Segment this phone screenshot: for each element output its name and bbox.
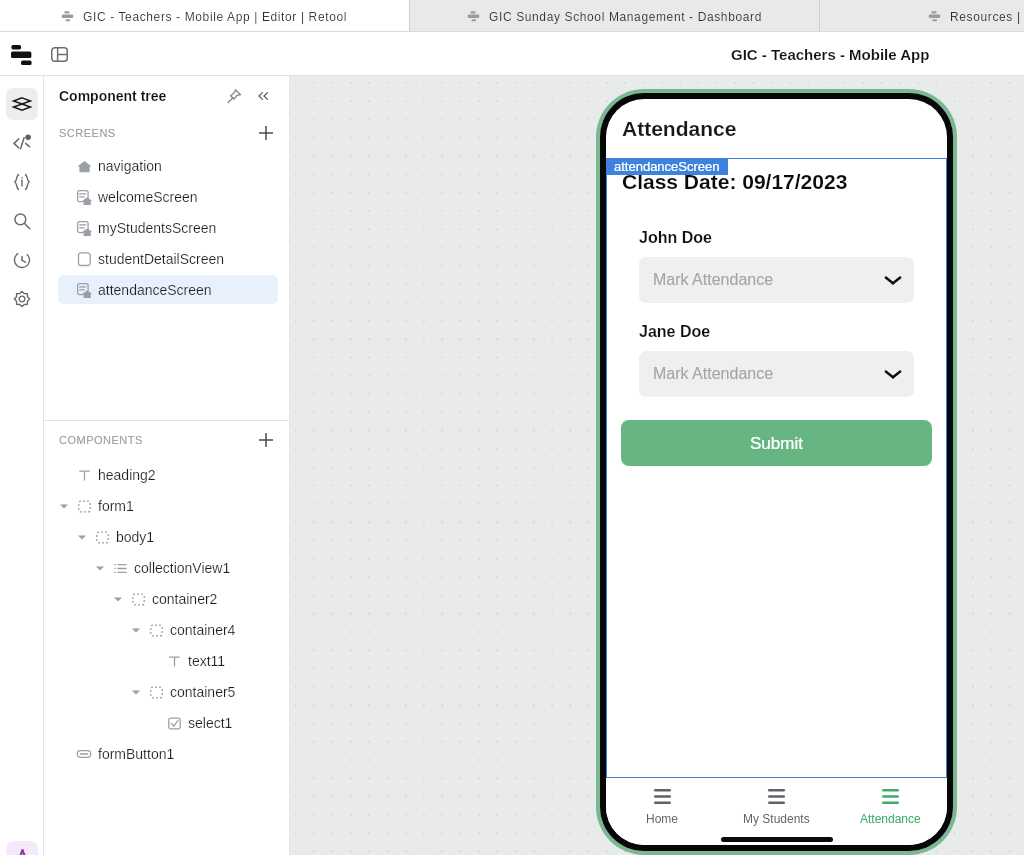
staticText: studentDetailScreen (98, 251, 225, 267)
button[interactable]: Code (6, 127, 38, 159)
button[interactable]: studentDetailScreen (58, 244, 278, 273)
button[interactable]: container2 (58, 584, 278, 613)
staticText: attendanceScreen (98, 282, 212, 298)
staticText: container2 (152, 591, 218, 607)
button[interactable]: State (6, 166, 38, 198)
staticText: GIC Sunday School Management - Dashboard (489, 10, 762, 23)
button[interactable]: Mark Attendance (639, 257, 914, 303)
button[interactable]: History (6, 244, 38, 276)
staticText: text11 (188, 653, 226, 669)
staticText: body1 (116, 529, 155, 545)
staticText: collectionView1 (134, 560, 231, 576)
staticText: welcomeScreen (98, 189, 198, 205)
button[interactable]: My Students (719, 787, 833, 827)
button[interactable]: Search (6, 205, 38, 237)
button[interactable]: Pin panel (223, 85, 245, 107)
staticText: Mark Attendance (653, 365, 774, 383)
button[interactable]: select1 (58, 708, 278, 737)
staticText: attendanceScreen (614, 159, 720, 174)
button[interactable]: Add COMPONENTS (255, 429, 277, 451)
staticText: form1 (98, 498, 134, 514)
button[interactable]: welcomeScreen (58, 182, 278, 211)
button[interactable]: myStudentsScreen (58, 213, 278, 242)
button[interactable]: attendanceScreen (58, 275, 278, 304)
button[interactable]: Submit (621, 420, 932, 466)
button[interactable]: Collapse panel (252, 85, 274, 107)
staticText: Attendance (860, 812, 921, 825)
button[interactable]: Add SCREENS (255, 122, 277, 144)
button[interactable]: Retool home (6, 39, 37, 70)
button[interactable]: Toggle panel (44, 39, 74, 69)
staticText: John Doe (639, 229, 712, 247)
button[interactable]: Component tree (6, 88, 38, 120)
staticText: Class Date: 09/17/2023 (622, 170, 848, 193)
button[interactable]: Home (606, 787, 719, 827)
button[interactable]: body1 (58, 522, 278, 551)
staticText: navigation (98, 158, 162, 174)
staticText: GIC - Teachers - Mobile App | Editor | R… (83, 10, 348, 23)
button[interactable]: form1 (58, 491, 278, 520)
staticText: GIC - Teachers - Mobile App (731, 46, 930, 63)
staticText: My Students (743, 812, 810, 825)
button[interactable]: Resources | (820, 0, 1024, 32)
button[interactable]: collectionView1 (58, 553, 278, 582)
button[interactable]: AI assistant (6, 841, 38, 855)
staticText: Home (646, 812, 679, 825)
staticText: heading2 (98, 467, 156, 483)
staticText: SCREENS (59, 127, 116, 139)
staticText: COMPONENTS (59, 434, 143, 446)
staticText: Mark Attendance (653, 271, 774, 289)
staticText: Attendance (622, 117, 737, 140)
staticText: container4 (170, 622, 236, 638)
staticText: Submit (750, 434, 803, 453)
staticText: formButton1 (98, 746, 175, 762)
button[interactable]: heading2 (58, 460, 278, 489)
button[interactable]: text11 (58, 646, 278, 675)
staticText: Component tree (59, 88, 167, 104)
staticText: container5 (170, 684, 236, 700)
button[interactable]: GIC Sunday School Management - Dashboard (410, 0, 819, 32)
button[interactable]: container4 (58, 615, 278, 644)
button[interactable]: Settings (6, 283, 38, 315)
button[interactable]: GIC - Teachers - Mobile App | Editor | R… (0, 0, 409, 32)
button[interactable]: formButton1 (58, 739, 278, 768)
button[interactable]: navigation (58, 151, 278, 180)
staticText: select1 (188, 715, 233, 731)
button[interactable]: Mark Attendance (639, 351, 914, 397)
staticText: Jane Doe (639, 323, 711, 341)
staticText: myStudentsScreen (98, 220, 217, 236)
button[interactable]: container5 (58, 677, 278, 706)
staticText: Resources | (950, 10, 1021, 23)
button[interactable]: Attendance (833, 787, 947, 827)
